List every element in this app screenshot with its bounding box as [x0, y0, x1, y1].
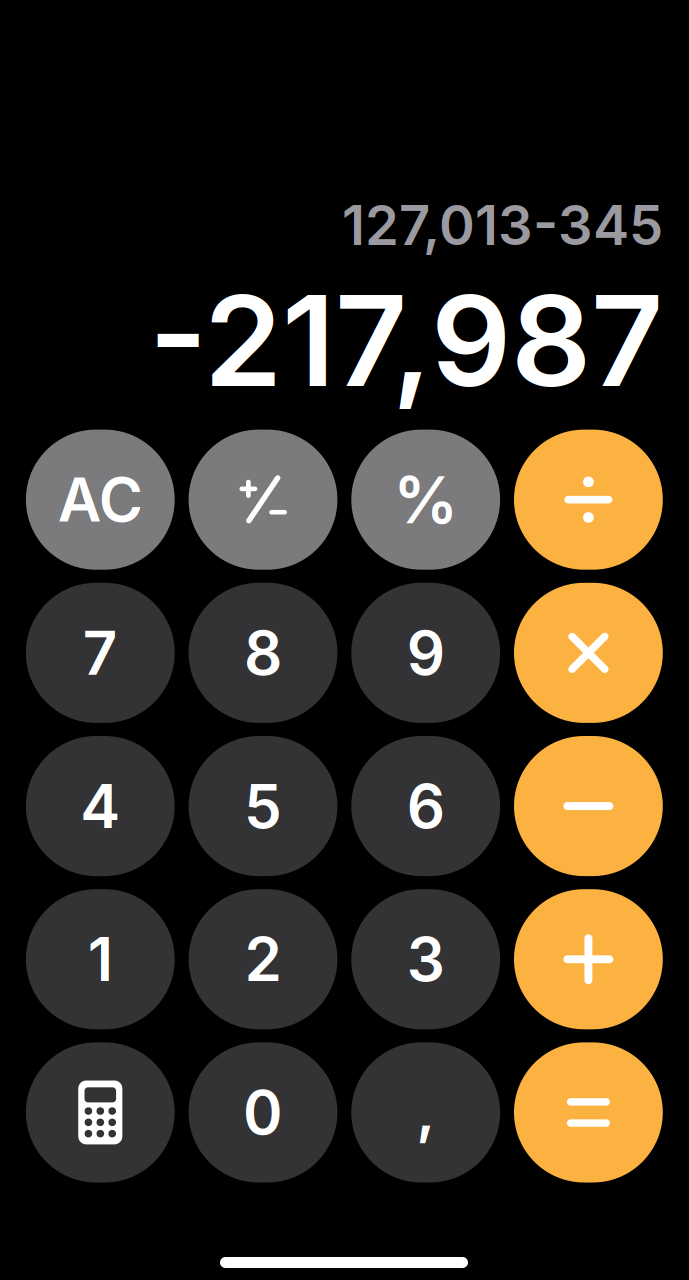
staticText: 7 — [83, 617, 118, 689]
button[interactable]: 2 — [189, 889, 337, 1029]
button[interactable]: 5 — [189, 736, 337, 876]
staticText: 6 — [407, 770, 445, 842]
staticText: 127,013-345 — [342, 192, 663, 258]
button[interactable]: % — [351, 430, 500, 570]
staticText: 1 — [88, 923, 113, 996]
staticText: 3 — [407, 923, 445, 996]
staticText: 0 — [243, 1076, 283, 1149]
button[interactable]: 0 — [189, 1042, 337, 1182]
button[interactable]: 7 — [26, 583, 175, 723]
button[interactable]: 1 — [26, 889, 175, 1029]
staticText: % — [393, 460, 458, 539]
button[interactable]: Equals — [514, 1042, 663, 1182]
staticText: 2 — [244, 923, 281, 996]
button[interactable]: Divide — [514, 430, 663, 570]
button[interactable]: 9 — [351, 583, 500, 723]
button[interactable]: Plus — [514, 889, 663, 1029]
button[interactable]: AC — [26, 430, 175, 570]
staticText: , — [416, 1074, 435, 1147]
staticText: -217,987 — [149, 265, 663, 416]
staticText: 4 — [80, 770, 120, 842]
button[interactable]: Multiply — [514, 583, 663, 723]
staticText: 9 — [407, 617, 445, 689]
button[interactable]: Plus minus — [189, 430, 337, 570]
staticText: 5 — [244, 770, 282, 842]
button[interactable]: 3 — [351, 889, 500, 1029]
staticText: AC — [58, 463, 143, 536]
button[interactable]: Minus — [514, 736, 663, 876]
staticText: 8 — [244, 617, 282, 689]
button[interactable]: Calculator — [26, 1042, 175, 1182]
button[interactable]: 6 — [351, 736, 500, 876]
button[interactable]: , — [351, 1042, 500, 1182]
button[interactable]: 8 — [189, 583, 337, 723]
button[interactable]: 4 — [26, 736, 175, 876]
